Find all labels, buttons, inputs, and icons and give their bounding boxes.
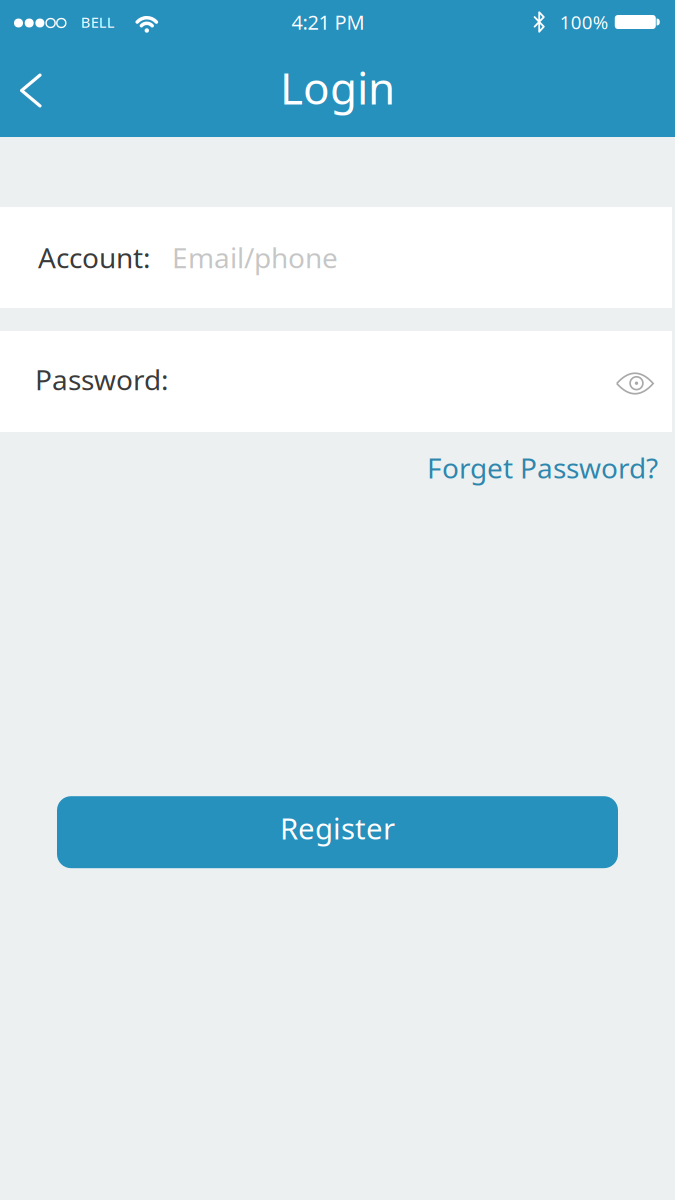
staticText: Email/phone: [172, 239, 338, 276]
staticText: Account:: [38, 239, 151, 276]
staticText: Login: [280, 58, 395, 117]
staticText: 4:21 PM: [291, 9, 364, 35]
button[interactable]: Show password: [616, 368, 654, 394]
staticText: BELL: [81, 12, 115, 32]
button[interactable]: Forget Password?: [427, 449, 658, 486]
staticText: 100%: [560, 10, 609, 34]
button[interactable]: Account email or phone: [0, 207, 675, 308]
staticText: Forget Password?: [427, 449, 658, 486]
staticText: Register: [280, 809, 395, 848]
button[interactable]: Password: [0, 331, 675, 432]
button[interactable]: Back: [0, 45, 42, 135]
button[interactable]: Register: [57, 796, 618, 868]
staticText: Password:: [35, 361, 169, 398]
